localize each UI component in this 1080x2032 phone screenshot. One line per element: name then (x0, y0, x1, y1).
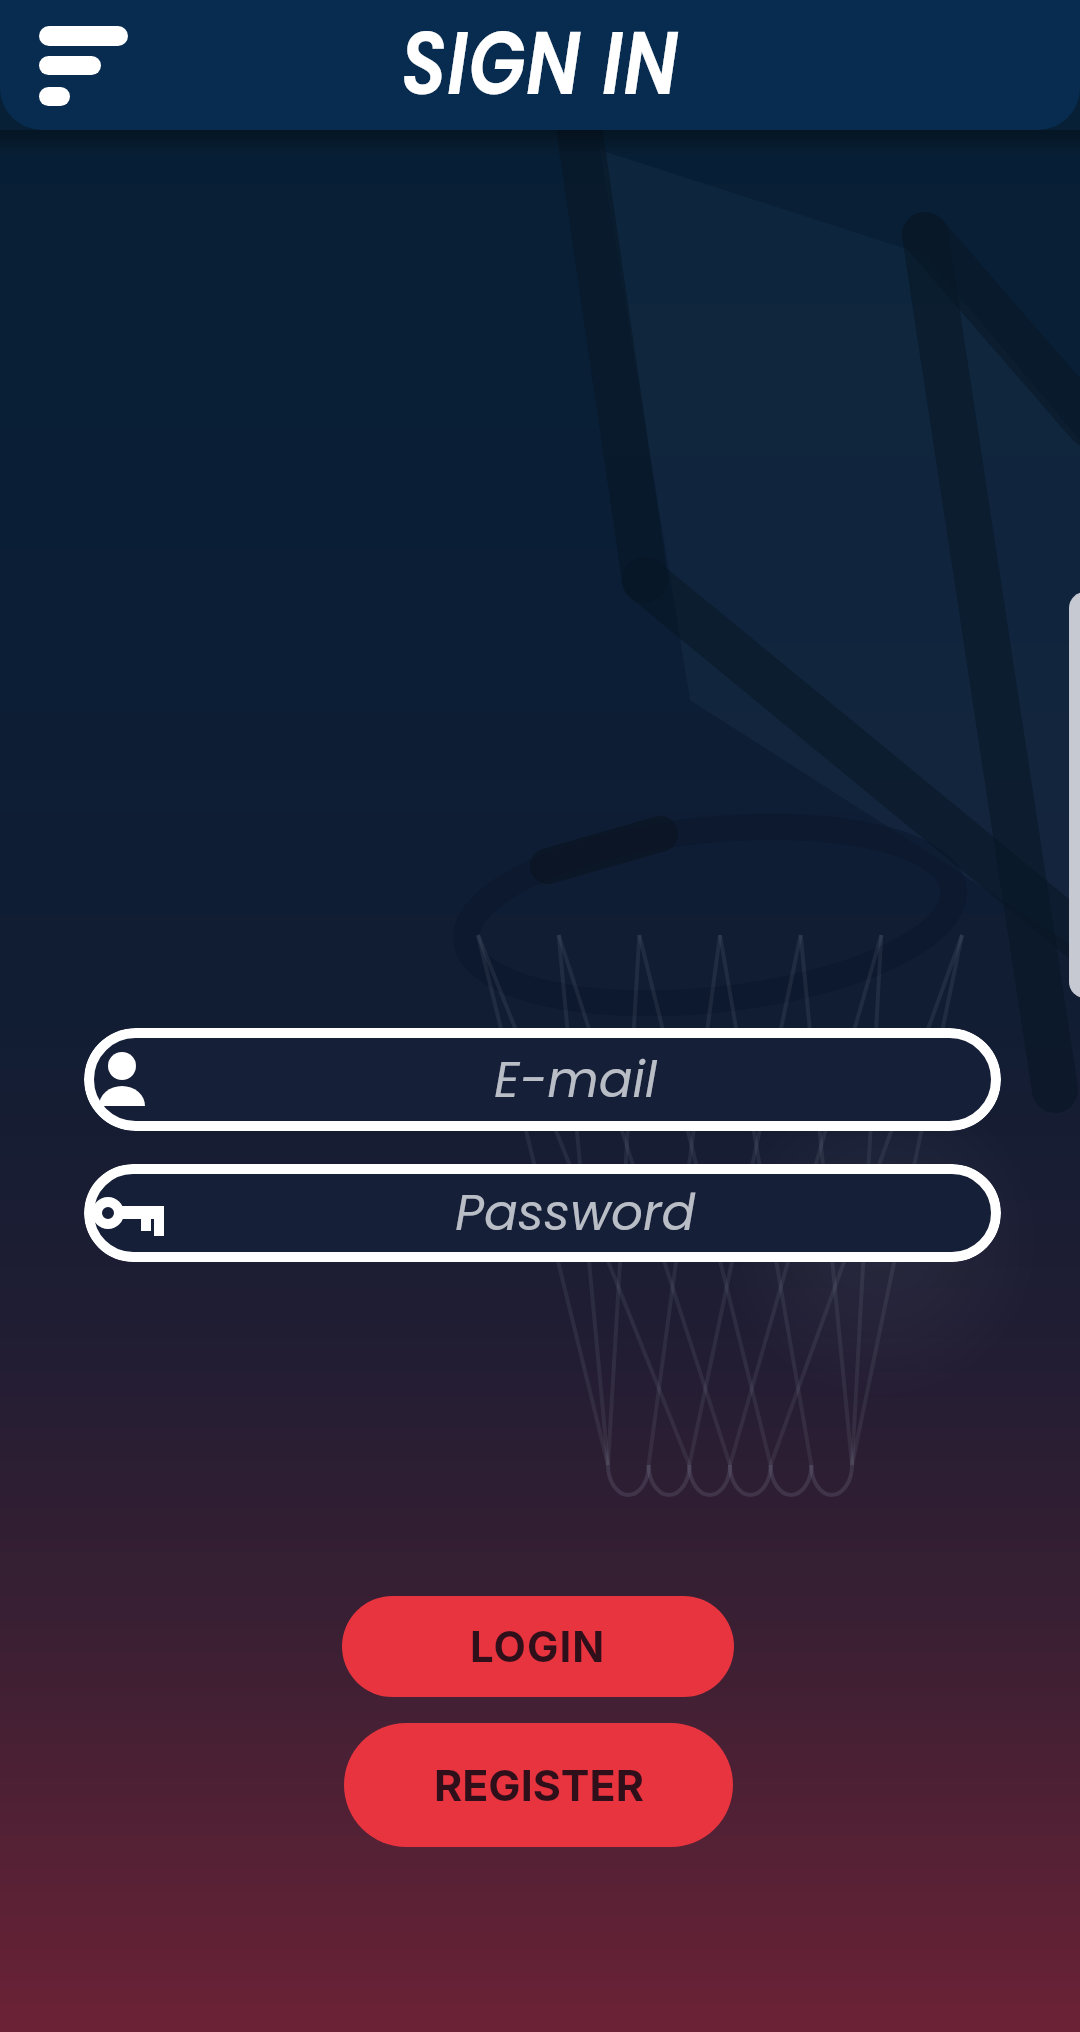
staticText: SIGN IN (401, 1, 680, 124)
staticText: REGISTER (434, 1759, 644, 1811)
button[interactable]: E-mail (84, 1028, 1001, 1131)
button[interactable]: LOGIN (342, 1596, 734, 1697)
staticText: E-mail (494, 1045, 658, 1115)
button[interactable] (24, 10, 144, 122)
button[interactable]: REGISTER (344, 1723, 733, 1847)
staticText: LOGIN (470, 1621, 606, 1672)
staticText: Password (455, 1178, 696, 1248)
button[interactable]: Password (84, 1164, 1001, 1262)
